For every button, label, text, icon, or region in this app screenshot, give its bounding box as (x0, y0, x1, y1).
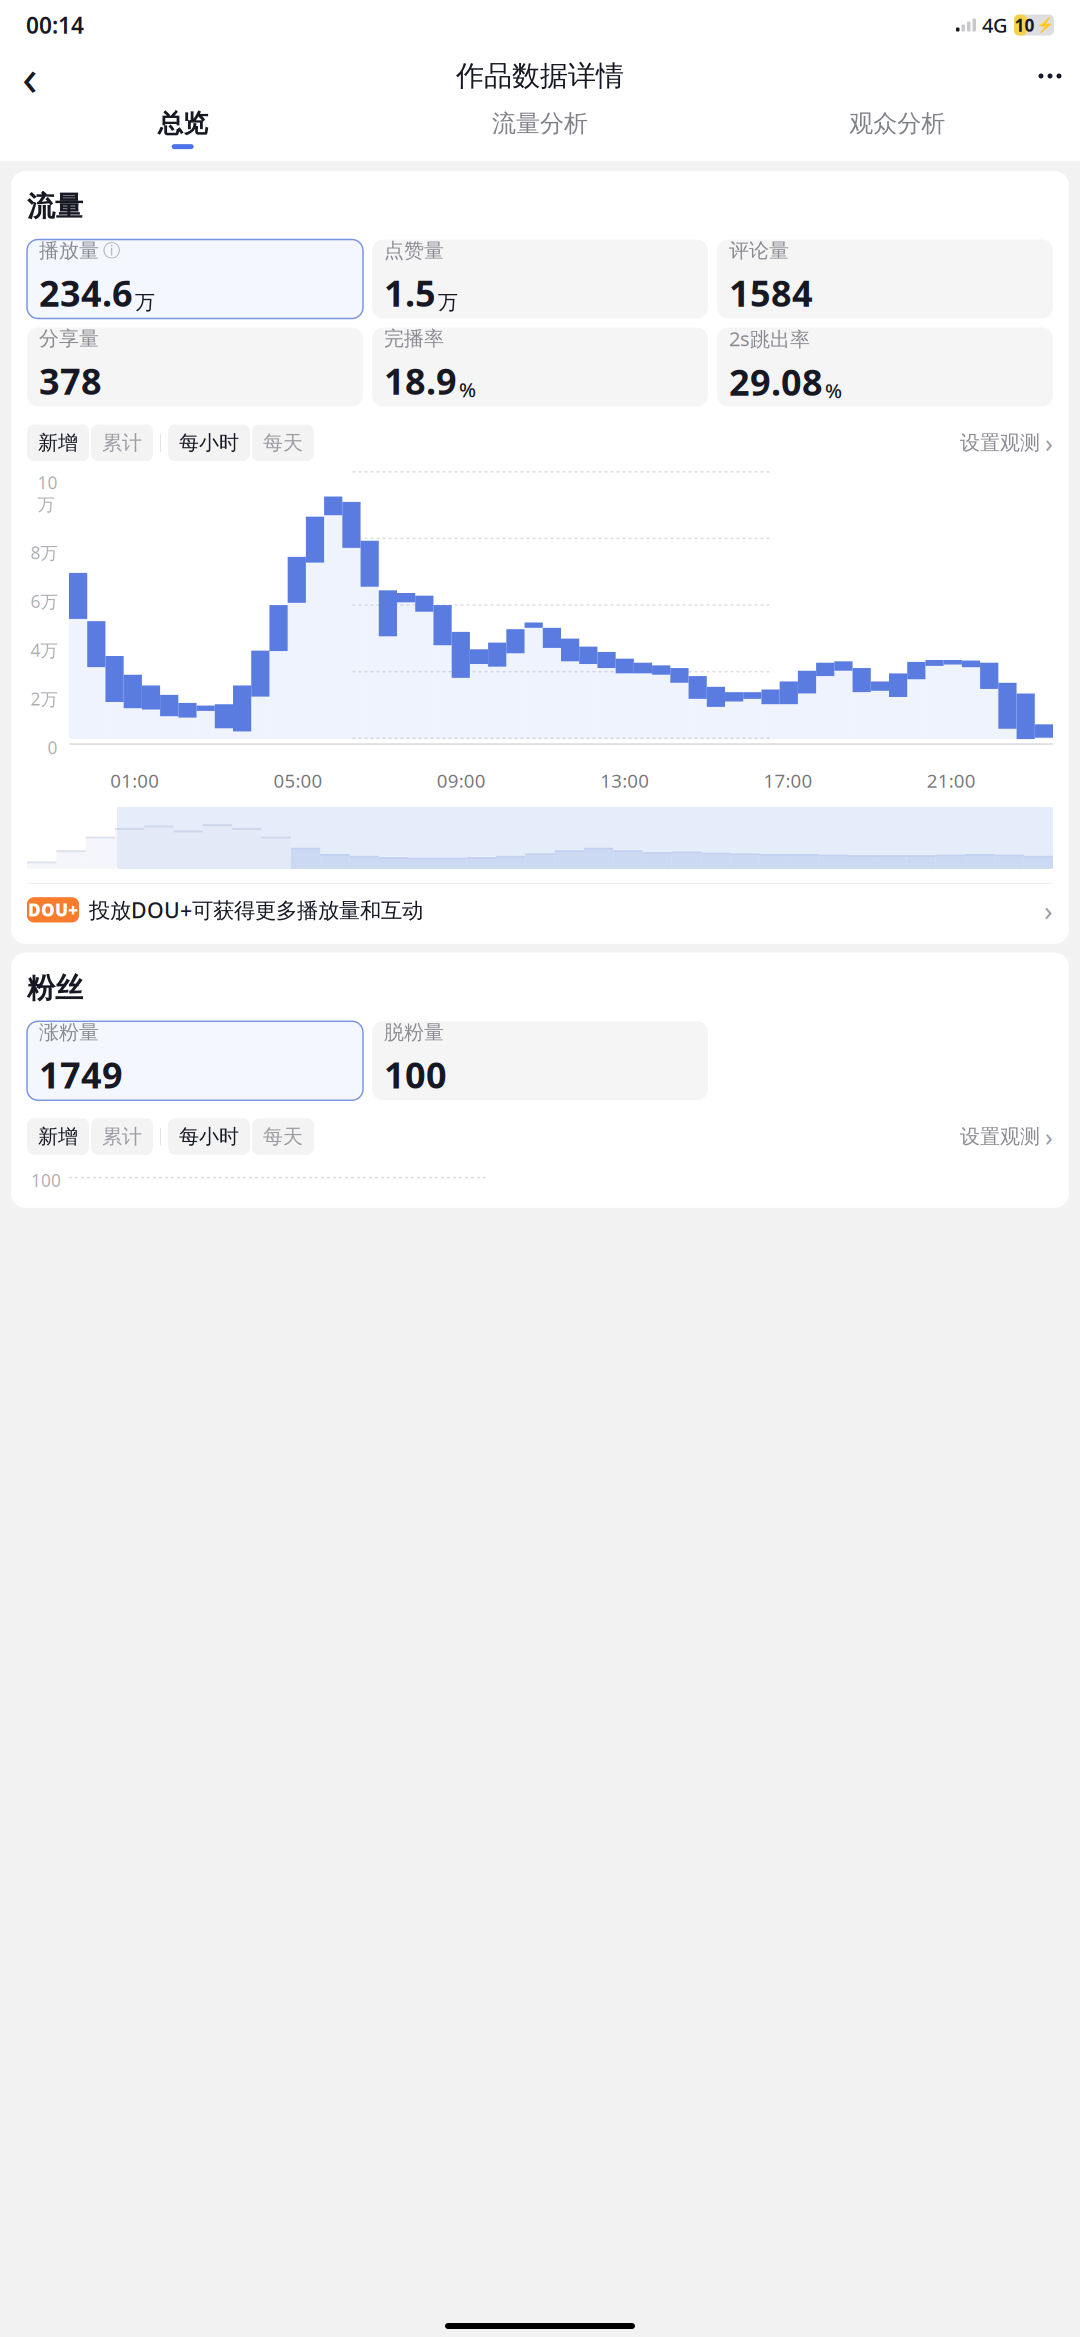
staticText: 00:14 (26, 10, 84, 40)
staticText: › (1045, 426, 1053, 460)
button[interactable]: 每天 (252, 1118, 314, 1155)
button[interactable]: More options (1028, 54, 1072, 98)
button[interactable]: 每小时 (168, 1118, 250, 1155)
staticText: 完播率 (384, 326, 444, 351)
staticText: 10 (1014, 13, 1034, 36)
button[interactable]: 设置观测 (960, 426, 1053, 460)
button[interactable]: 总览 (4, 108, 361, 149)
staticText: › (1044, 891, 1053, 928)
staticText: 每小时 (179, 430, 239, 455)
staticText: 10万 (37, 471, 57, 515)
staticText: 涨粉量 (39, 1020, 99, 1045)
button[interactable]: 完播率 (372, 327, 708, 406)
staticText: 2s跳出率 (729, 325, 810, 352)
staticText: 4G (982, 12, 1008, 38)
button[interactable]: 新增 (27, 1118, 89, 1155)
button[interactable]: 脱粉量 (372, 1021, 708, 1100)
staticText: 投放DOU+可获得更多播放量和互动 (89, 896, 423, 924)
staticText: 脱粉量 (384, 1020, 444, 1045)
button[interactable]: 涨粉量 (27, 1021, 363, 1100)
staticText: % (825, 377, 842, 404)
button[interactable]: 新增 (27, 424, 89, 461)
button[interactable]: 设置观测 (960, 1120, 1053, 1153)
staticText: 每天 (263, 1124, 303, 1149)
staticText: 4万 (30, 639, 57, 662)
staticText: 作品数据详情 (456, 59, 624, 93)
staticText: 播放量 (39, 238, 99, 263)
button[interactable]: 每小时 (168, 424, 250, 461)
button[interactable]: 分享量 (27, 327, 363, 406)
staticText: 29.08 (729, 358, 823, 406)
button[interactable]: 每天 (252, 424, 314, 461)
staticText: 新增 (38, 1124, 78, 1149)
staticText: 234.6 (39, 269, 133, 317)
staticText: 观众分析 (849, 109, 945, 138)
staticText: 每小时 (179, 1124, 239, 1149)
staticText: 21:00 (927, 768, 976, 793)
staticText: 100 (384, 1051, 447, 1098)
staticText: 累计 (102, 1124, 142, 1149)
staticText: 2万 (30, 687, 57, 710)
staticText: DOU+ (28, 898, 78, 921)
button[interactable]: 2s跳出率 (717, 327, 1053, 406)
staticText: 378 (39, 357, 102, 405)
staticText: 1749 (39, 1051, 123, 1098)
staticText: ⓘ (103, 240, 120, 261)
staticText: 设置观测 (960, 430, 1040, 455)
button[interactable]: 累计 (91, 1118, 153, 1155)
button[interactable]: 播放量 (27, 239, 363, 318)
staticText: 累计 (102, 430, 142, 455)
staticText: 13:00 (600, 768, 649, 793)
button[interactable]: 累计 (91, 424, 153, 461)
staticText: 新增 (38, 430, 78, 455)
staticText: 17:00 (763, 768, 812, 793)
button[interactable]: 流量分析 (361, 109, 719, 148)
staticText: 1584 (729, 269, 813, 317)
staticText: 总览 (158, 108, 208, 139)
staticText: 8万 (30, 541, 57, 564)
staticText: 评论量 (729, 238, 789, 263)
staticText: › (1045, 1120, 1053, 1153)
staticText: 流量 (27, 189, 83, 223)
staticText: 万 (135, 290, 155, 315)
staticText: 每天 (263, 430, 303, 455)
staticText: ‹ (22, 42, 38, 110)
button[interactable]: 评论量 (717, 239, 1053, 318)
button[interactable]: Back (8, 54, 52, 98)
staticText: ⚡ (1035, 17, 1053, 33)
staticText: 05:00 (273, 768, 322, 793)
staticText: 01:00 (110, 768, 159, 793)
staticText: 粉丝 (27, 971, 83, 1005)
staticText: 设置观测 (960, 1124, 1040, 1149)
button[interactable]: 观众分析 (719, 109, 1076, 148)
staticText: 万 (438, 290, 458, 315)
staticText: 0 (47, 736, 57, 759)
staticText: 18.9 (384, 357, 457, 405)
staticText: 6万 (30, 590, 57, 613)
button[interactable]: DOU+ (27, 886, 1053, 934)
button[interactable]: 点赞量 (372, 239, 708, 318)
staticText: 100 (31, 1169, 61, 1192)
staticText: 流量分析 (492, 109, 588, 138)
staticText: 09:00 (437, 768, 486, 793)
staticText: 点赞量 (384, 238, 444, 263)
staticText: 1.5 (384, 269, 436, 317)
staticText: 分享量 (39, 326, 99, 351)
staticText: % (459, 376, 476, 403)
